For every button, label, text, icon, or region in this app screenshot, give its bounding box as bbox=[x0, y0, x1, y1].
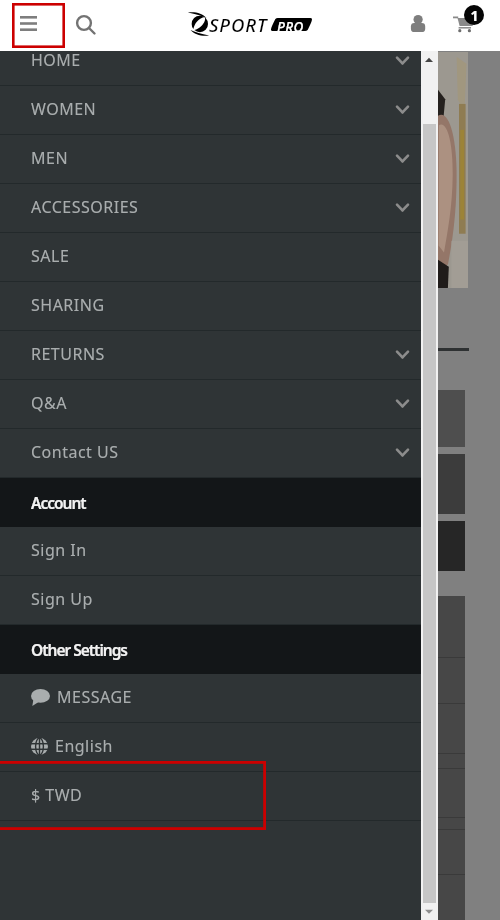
staticText: Contact US bbox=[31, 441, 119, 463]
button[interactable]: Q&A bbox=[0, 380, 421, 429]
button[interactable]: Sign In bbox=[0, 527, 421, 576]
button[interactable]: Account bbox=[0, 478, 421, 527]
staticText: $ TWD bbox=[31, 784, 83, 806]
button[interactable]: SALE bbox=[0, 233, 421, 282]
button[interactable]: WOMEN bbox=[0, 86, 421, 135]
staticText: Sign In bbox=[31, 539, 87, 561]
staticText: SPORT bbox=[209, 12, 268, 37]
button[interactable]: Search bbox=[70, 9, 100, 39]
button[interactable]: MEN bbox=[0, 135, 421, 184]
button[interactable]: My account bbox=[405, 8, 431, 38]
staticText: SHARING bbox=[31, 294, 105, 316]
staticText: RETURNS bbox=[31, 343, 105, 365]
staticText: ACCESSORIES bbox=[31, 196, 139, 218]
button[interactable]: SHARING bbox=[0, 282, 421, 331]
staticText: SALE bbox=[31, 245, 70, 267]
button[interactable]: $ TWD bbox=[0, 772, 421, 821]
button[interactable]: Shopping cart, 1 item bbox=[450, 0, 488, 40]
staticText: MEN bbox=[31, 147, 69, 169]
staticText: 1 bbox=[470, 6, 479, 25]
staticText: English bbox=[55, 735, 113, 757]
button[interactable]: English bbox=[0, 723, 421, 772]
staticText: WOMEN bbox=[31, 98, 97, 120]
staticText: HOME bbox=[31, 51, 81, 71]
button[interactable]: Other Settings bbox=[0, 625, 421, 674]
staticText: PRO bbox=[277, 18, 304, 36]
button[interactable]: RETURNS bbox=[0, 331, 421, 380]
staticText: Sign Up bbox=[31, 588, 93, 610]
button[interactable]: ACCESSORIES bbox=[0, 184, 421, 233]
staticText: Q&A bbox=[31, 392, 67, 414]
button[interactable]: HOME bbox=[0, 51, 421, 86]
staticText: Other Settings bbox=[31, 639, 128, 660]
button[interactable]: MESSAGE bbox=[0, 674, 421, 723]
staticText: MESSAGE bbox=[57, 686, 132, 708]
button[interactable]: Contact US bbox=[0, 429, 421, 478]
button[interactable]: Sign Up bbox=[0, 576, 421, 625]
button[interactable]: Open navigation menu bbox=[12, 3, 65, 48]
staticText: Account bbox=[31, 492, 86, 513]
